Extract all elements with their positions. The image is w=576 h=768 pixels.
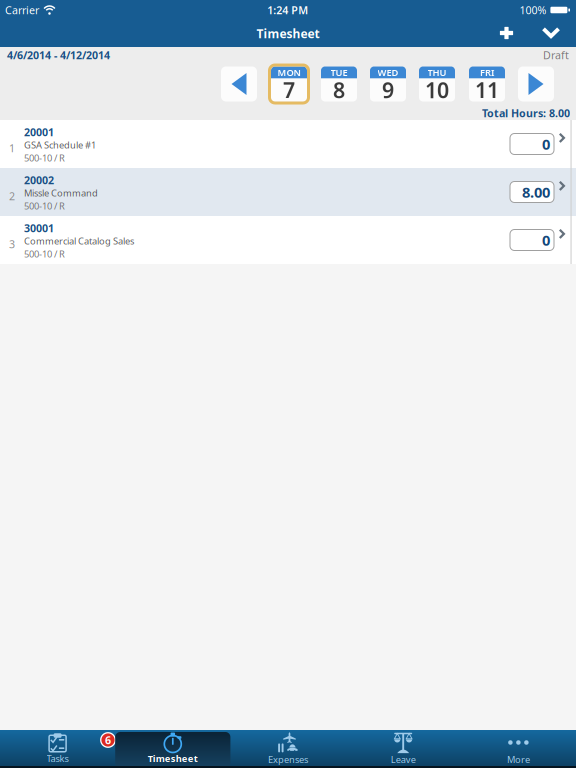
staticText: More xyxy=(507,753,530,766)
staticText: 500-10 / R xyxy=(24,248,65,260)
staticText: 11 xyxy=(475,76,499,104)
button[interactable]: Add xyxy=(479,20,524,47)
button[interactable]: Next week xyxy=(518,66,554,101)
button[interactable]: Previous week xyxy=(221,66,257,101)
button[interactable]: 2 xyxy=(0,168,576,216)
staticText: 0 xyxy=(542,230,550,250)
staticText: Timesheet xyxy=(256,25,319,41)
staticText: 1 xyxy=(9,141,15,155)
button[interactable]: Tasks xyxy=(0,730,115,768)
staticText: TUE xyxy=(330,66,347,79)
staticText: Total Hours: 8.00 xyxy=(482,106,570,120)
staticText: Missle Command xyxy=(24,187,98,199)
staticText: 3 xyxy=(9,237,15,251)
staticText: 100% xyxy=(519,3,546,17)
button[interactable]: THU xyxy=(419,64,455,104)
staticText: 500-10 / R xyxy=(24,200,65,212)
button[interactable]: Leave xyxy=(346,730,461,768)
staticText: MON xyxy=(277,66,300,79)
staticText: WED xyxy=(377,66,398,79)
staticText: 20002 xyxy=(24,173,54,187)
staticText: 30001 xyxy=(24,221,54,235)
button[interactable]: MON xyxy=(271,64,307,104)
staticText: Leave xyxy=(391,753,416,766)
staticText: 2 xyxy=(9,189,15,203)
staticText: 9 xyxy=(382,76,394,104)
staticText: 0 xyxy=(542,134,550,154)
staticText: Timesheet xyxy=(148,752,198,765)
staticText: Tasks xyxy=(47,752,69,765)
staticText: 20001 xyxy=(24,125,54,139)
button[interactable]: 3 xyxy=(0,216,576,264)
button[interactable]: 1 xyxy=(0,120,576,168)
staticText: 1:24 PM xyxy=(267,3,308,17)
button[interactable]: TUE xyxy=(321,64,357,104)
button[interactable]: FRI xyxy=(469,64,505,104)
staticText: 8 xyxy=(333,76,345,104)
staticText: Expenses xyxy=(268,753,308,766)
staticText: THU xyxy=(427,66,446,79)
button[interactable]: More xyxy=(461,730,576,768)
staticText: FRI xyxy=(480,66,494,79)
staticText: Draft xyxy=(543,48,569,62)
staticText: Carrier xyxy=(5,3,39,17)
button[interactable]: WED xyxy=(370,64,406,104)
staticText: 10 xyxy=(425,76,449,104)
staticText: 500-10 / R xyxy=(24,152,65,164)
staticText: 7 xyxy=(283,76,295,104)
staticText: Commercial Catalog Sales xyxy=(24,235,134,247)
staticText: 6 xyxy=(105,733,111,747)
staticText: 8.00 xyxy=(522,182,550,202)
button[interactable]: Expenses xyxy=(230,730,346,768)
button[interactable]: More options xyxy=(524,20,576,47)
staticText: GSA Schedule #1 xyxy=(24,139,96,151)
staticText: 4/6/2014 - 4/12/2014 xyxy=(7,48,110,62)
button[interactable]: Timesheet xyxy=(115,730,230,768)
